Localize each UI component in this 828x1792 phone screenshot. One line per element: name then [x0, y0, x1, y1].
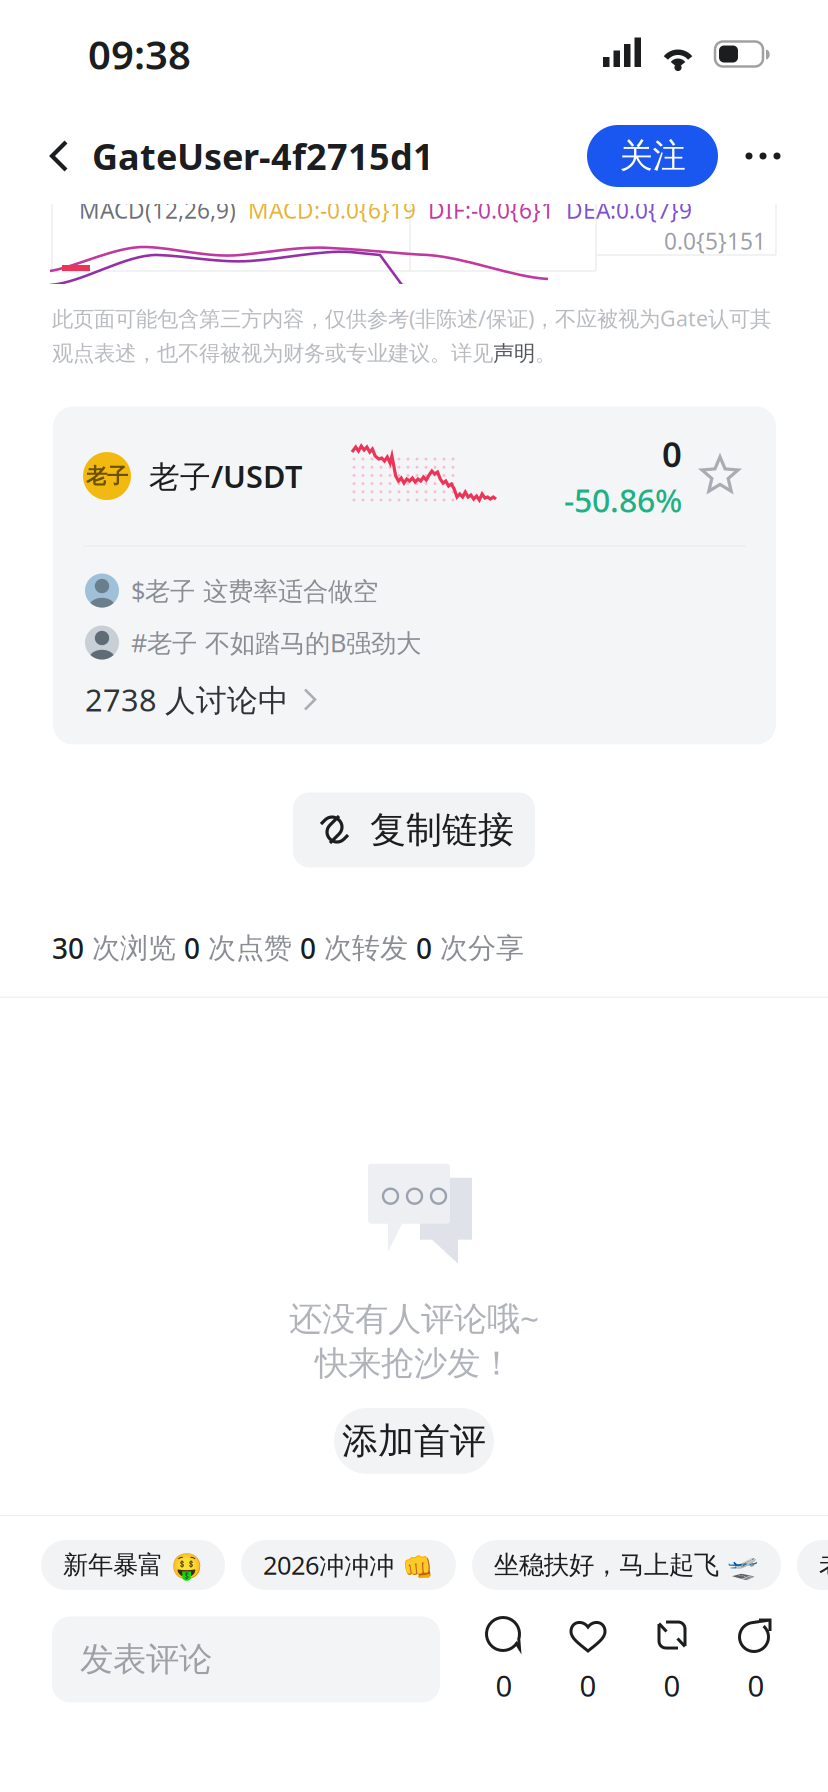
- staticText: DEA:0.0{7}9: [554, 195, 692, 225]
- button[interactable]: Share: [714, 1614, 798, 1705]
- staticText: MACD(12,26,9): [79, 195, 236, 225]
- button[interactable]: 复制链接: [293, 792, 535, 867]
- staticText: 09:38: [88, 27, 191, 80]
- button[interactable]: 发表评论: [52, 1616, 440, 1702]
- staticText: -50.86%: [564, 479, 682, 521]
- staticText: 坐稳扶好，马上起飞 🛫: [494, 1549, 759, 1580]
- staticText: 2026冲冲冲 👊: [263, 1548, 434, 1582]
- button[interactable]: 新年暴富 🤑: [41, 1540, 225, 1590]
- staticText: 添加首评: [342, 1419, 486, 1463]
- button[interactable]: 关注: [587, 125, 718, 187]
- staticText: 观点表述，也不得被视为财务或专业建议。详见: [52, 340, 493, 366]
- staticText: 0: [579, 1666, 596, 1705]
- staticText: 次浏览: [84, 931, 184, 965]
- staticText: 0: [300, 929, 316, 967]
- staticText: 次点赞: [200, 931, 300, 965]
- staticText: 0: [495, 1666, 512, 1705]
- staticText: 关注: [619, 135, 685, 176]
- staticText: 次分享: [432, 931, 524, 965]
- staticText: 老哥带带: [819, 1549, 828, 1580]
- staticText: 发表评论: [80, 1639, 212, 1680]
- button[interactable]: Comment: [462, 1614, 546, 1705]
- staticText: #老子 不如踏马的B强劲大: [131, 626, 421, 659]
- staticText: 复制链接: [370, 808, 514, 852]
- button[interactable]: 老哥带带: [797, 1540, 828, 1590]
- staticText: 0.0{5}151: [664, 226, 766, 256]
- staticText: 还没有人评论哦~: [289, 1296, 539, 1340]
- staticText: 0: [662, 431, 682, 477]
- staticText: GateUser-4f2715d1: [92, 132, 434, 180]
- staticText: 快来抢沙发！: [315, 1343, 513, 1384]
- staticText: 0: [184, 929, 200, 967]
- button[interactable]: Repost: [630, 1614, 714, 1705]
- staticText: 。: [535, 340, 556, 366]
- staticText: 老子: [86, 463, 128, 489]
- staticText: MACD:-0.0{6}19: [236, 195, 416, 225]
- staticText: 2738 人讨论中: [85, 679, 289, 720]
- staticText: 此页面可能包含第三方内容，仅供参考(非陈述/保证)，不应被视为Gate认可其: [52, 304, 771, 332]
- staticText: 30: [52, 929, 84, 967]
- staticText: 次转发: [316, 931, 416, 965]
- staticText: 声明: [493, 340, 535, 366]
- staticText: 0: [416, 929, 432, 967]
- staticText: DIF:-0.0{6}1: [416, 195, 554, 225]
- button[interactable]: 添加首评: [334, 1408, 494, 1474]
- button[interactable]: More options: [718, 125, 808, 187]
- button[interactable]: 坐稳扶好，马上起飞 🛫: [472, 1540, 781, 1590]
- staticText: 0: [747, 1666, 764, 1705]
- button[interactable]: Like: [546, 1614, 630, 1705]
- staticText: 新年暴富 🤑: [63, 1549, 203, 1580]
- button[interactable]: Back: [0, 120, 92, 192]
- staticText: 0: [663, 1666, 680, 1705]
- staticText: 老子/USDT: [149, 456, 302, 496]
- button[interactable]: 2738 人讨论中: [85, 668, 746, 730]
- button[interactable]: 2026冲冲冲 👊: [241, 1540, 456, 1590]
- staticText: $老子 这费率适合做空: [131, 574, 378, 607]
